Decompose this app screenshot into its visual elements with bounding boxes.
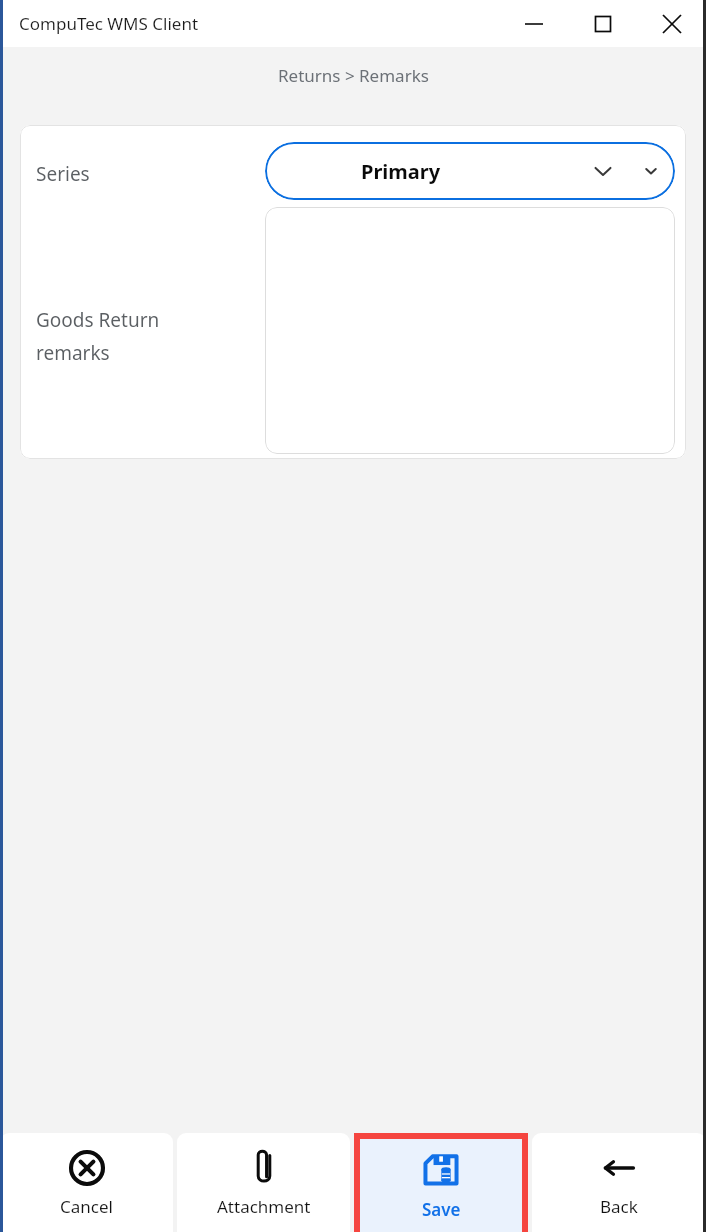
button[interactable]: Maximize bbox=[568, 0, 637, 47]
button[interactable]: Cancel bbox=[0, 1133, 173, 1232]
button[interactable]: Minimize bbox=[499, 0, 568, 47]
staticText: Cancel bbox=[60, 1195, 113, 1218]
staticText: Returns > Remarks bbox=[278, 64, 429, 87]
button[interactable]: Save bbox=[360, 1139, 522, 1232]
button[interactable]: Attachment bbox=[177, 1133, 350, 1232]
staticText: Primary bbox=[361, 158, 441, 185]
staticText: Save bbox=[422, 1198, 461, 1221]
button[interactable]: Back bbox=[532, 1133, 706, 1232]
button[interactable] bbox=[265, 207, 675, 454]
staticText: remarks bbox=[36, 340, 110, 366]
staticText: Attachment bbox=[217, 1195, 311, 1218]
button[interactable]: Close bbox=[637, 0, 706, 47]
staticText: Goods Return bbox=[36, 307, 160, 333]
staticText: Back bbox=[600, 1195, 638, 1218]
button[interactable]: Primary bbox=[265, 142, 675, 200]
staticText: Series bbox=[36, 161, 90, 187]
staticText: CompuTec WMS Client bbox=[19, 12, 199, 35]
